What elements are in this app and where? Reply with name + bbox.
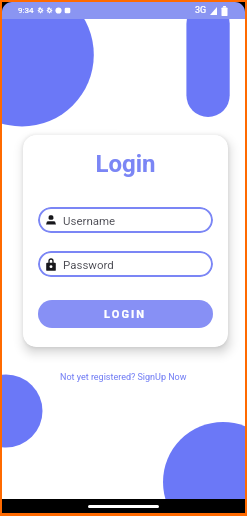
- other: Home gesture bar: [88, 505, 159, 508]
- button[interactable]: Not yet registered? SignUp Now: [2, 369, 245, 385]
- staticText: Login: [23, 150, 228, 178]
- button[interactable]: Username: [38, 207, 213, 233]
- staticText: Password: [63, 258, 114, 271]
- staticText: Username: [63, 214, 116, 227]
- staticText: 9:34: [18, 6, 34, 15]
- staticText: 3G: [195, 5, 207, 16]
- staticText: Not yet registered? SignUp Now: [60, 372, 187, 383]
- button[interactable]: LOGIN: [38, 300, 213, 328]
- staticText: LOGIN: [104, 308, 147, 321]
- button[interactable]: Password: [38, 251, 213, 277]
